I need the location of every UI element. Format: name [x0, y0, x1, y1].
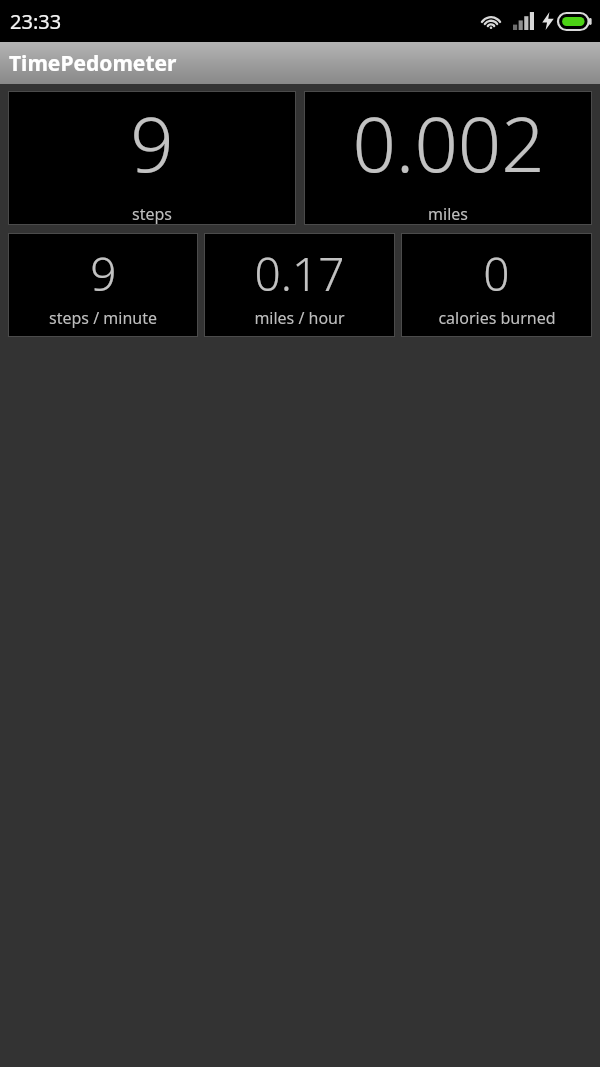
staticText: miles / hour: [254, 307, 345, 329]
staticText: steps / minute: [49, 307, 157, 329]
button[interactable]: 0: [401, 233, 592, 337]
staticText: calories burned: [438, 307, 556, 329]
staticText: steps: [132, 203, 172, 225]
button[interactable]: 0.17: [204, 233, 395, 337]
staticText: 0.002: [352, 91, 545, 195]
button[interactable]: 9: [8, 91, 296, 225]
button[interactable]: 0.002: [304, 91, 592, 225]
staticText: 9: [130, 91, 174, 195]
staticText: 9: [90, 242, 117, 305]
staticText: TimePedometer: [9, 49, 177, 78]
staticText: 0.17: [254, 242, 345, 305]
staticText: miles: [428, 203, 468, 225]
button[interactable]: 9: [8, 233, 198, 337]
staticText: 0: [483, 242, 510, 305]
staticText: 23:33: [10, 8, 62, 35]
